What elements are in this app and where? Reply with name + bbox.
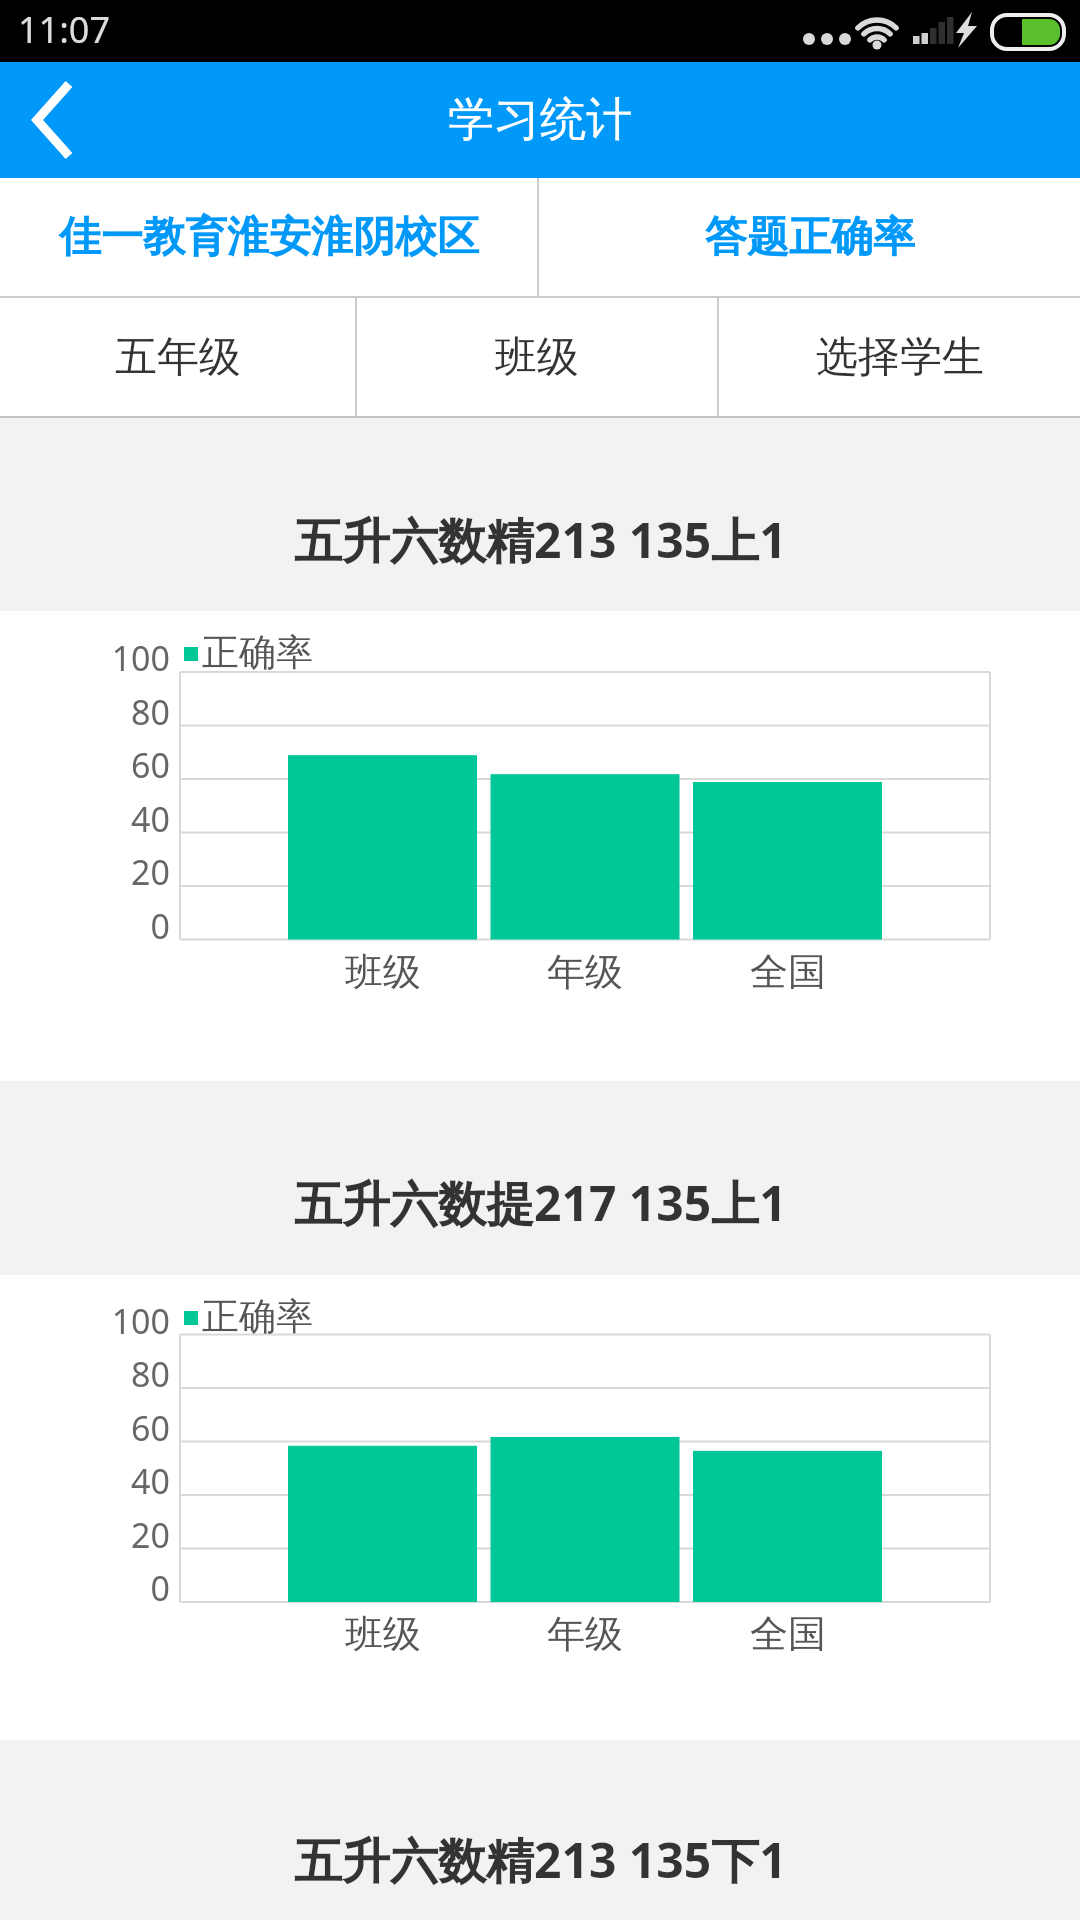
staticText: 五升六数精213 135上1 <box>294 507 787 573</box>
button[interactable]: 选择学生 <box>719 298 1080 416</box>
staticText: 0 <box>150 1565 170 1611</box>
staticText: 选择学生 <box>816 331 984 384</box>
staticText: 80 <box>131 1351 170 1397</box>
staticText: 班级 <box>495 331 579 384</box>
button[interactable]: 答题正确率 <box>539 178 1080 296</box>
staticText: 五升六数提217 135上1 <box>294 1170 787 1236</box>
staticText: 年级 <box>547 948 623 996</box>
staticText: 20 <box>131 1512 170 1558</box>
staticText: 正确率 <box>202 1293 313 1340</box>
button[interactable]: 佳一教育淮安淮阴校区 <box>0 178 537 296</box>
staticText: 班级 <box>345 948 421 996</box>
staticText: 80 <box>131 689 170 735</box>
staticText: 全国 <box>750 948 826 996</box>
staticText: 60 <box>131 742 170 788</box>
staticText: 20 <box>131 849 170 895</box>
staticText: 100 <box>111 635 170 681</box>
staticText: 年级 <box>547 1610 623 1658</box>
staticText: 全国 <box>750 1610 826 1658</box>
staticText: 学习统计 <box>448 91 632 149</box>
button[interactable]: 班级 <box>357 298 717 416</box>
staticText: 11:07 <box>18 5 111 54</box>
staticText: 0 <box>150 903 170 949</box>
staticText: 五年级 <box>115 331 241 384</box>
button[interactable]: 五年级 <box>0 298 355 416</box>
button[interactable] <box>0 62 110 178</box>
staticText: 正确率 <box>202 629 313 676</box>
staticText: 60 <box>131 1405 170 1451</box>
staticText: 答题正确率 <box>705 211 915 264</box>
staticText: 100 <box>111 1298 170 1344</box>
staticText: 佳一教育淮安淮阴校区 <box>59 211 479 264</box>
staticText: 40 <box>131 796 170 842</box>
staticText: 40 <box>131 1458 170 1504</box>
staticText: 班级 <box>345 1610 421 1658</box>
staticText: 五升六数精213 135下1 <box>294 1827 787 1893</box>
